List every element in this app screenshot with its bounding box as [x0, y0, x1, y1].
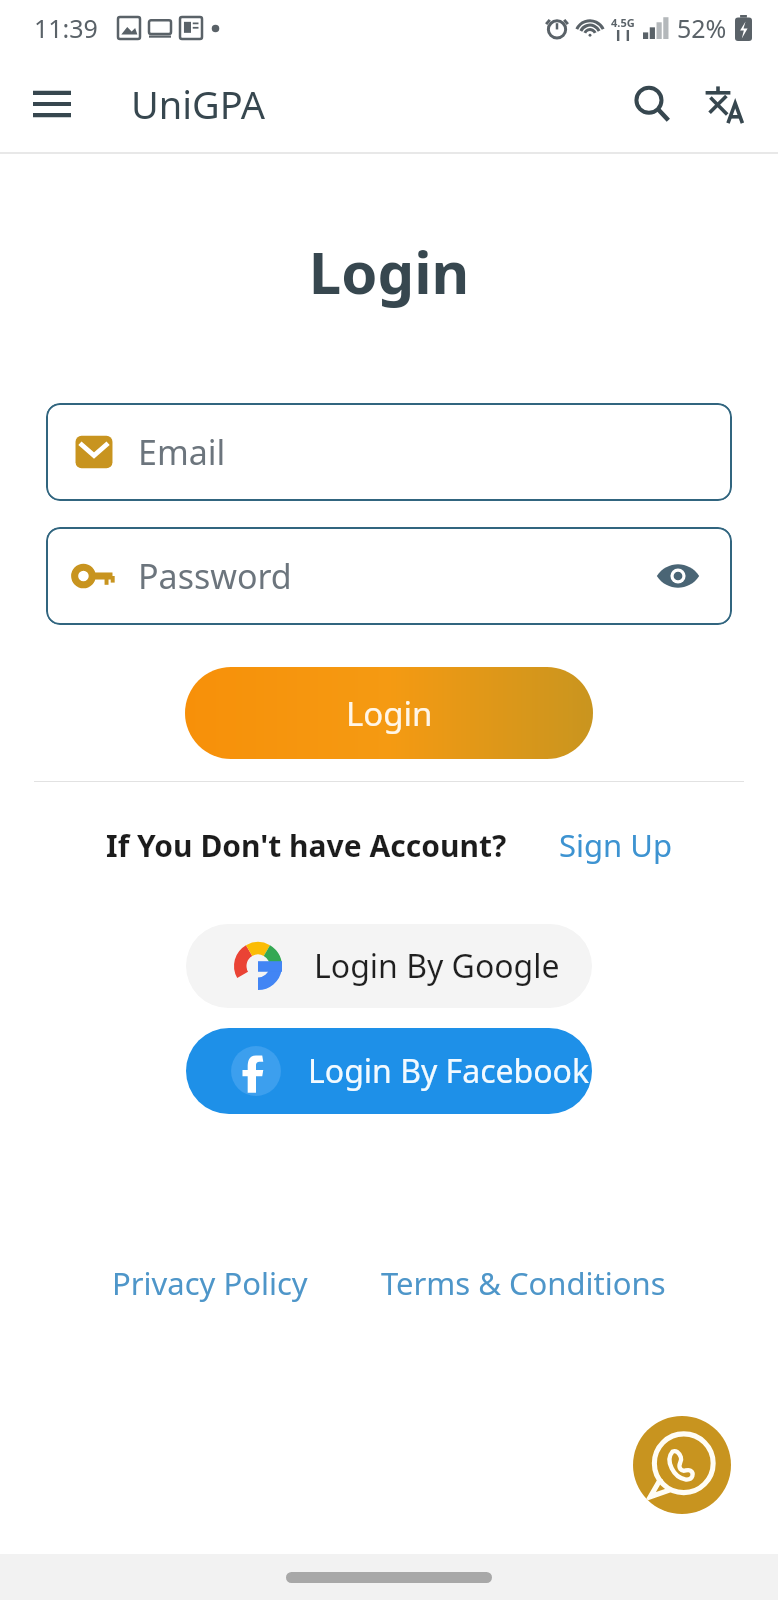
button[interactable]: Login By Facebook [186, 1028, 592, 1114]
staticText: UniGPA [131, 78, 266, 130]
staticText: Login [346, 691, 433, 736]
staticText: Password [138, 553, 292, 599]
staticText: 52% [677, 11, 727, 45]
button[interactable]: Menu [16, 68, 88, 140]
button[interactable]: Email [46, 403, 732, 501]
staticText: Email [138, 429, 226, 475]
button[interactable]: Privacy Policy [112, 1262, 308, 1304]
staticText: Login By Facebook [308, 1049, 590, 1093]
button[interactable]: Login By Google [186, 924, 592, 1008]
button[interactable]: WhatsApp [633, 1416, 731, 1514]
button[interactable]: Password [46, 527, 732, 625]
button[interactable]: Translate [688, 68, 760, 140]
staticText: Login [0, 232, 778, 311]
button[interactable]: Search [616, 68, 688, 140]
button[interactable]: If You Don't have Account? [106, 825, 507, 866]
staticText: Login By Google [314, 944, 560, 988]
button[interactable]: Login [185, 667, 593, 759]
button[interactable]: Terms & Conditions [381, 1262, 666, 1304]
button[interactable]: Sign Up [559, 824, 673, 866]
staticText: 11:39 [34, 11, 98, 45]
button[interactable]: Show password [650, 548, 706, 604]
staticText: 4.5G [611, 15, 635, 30]
